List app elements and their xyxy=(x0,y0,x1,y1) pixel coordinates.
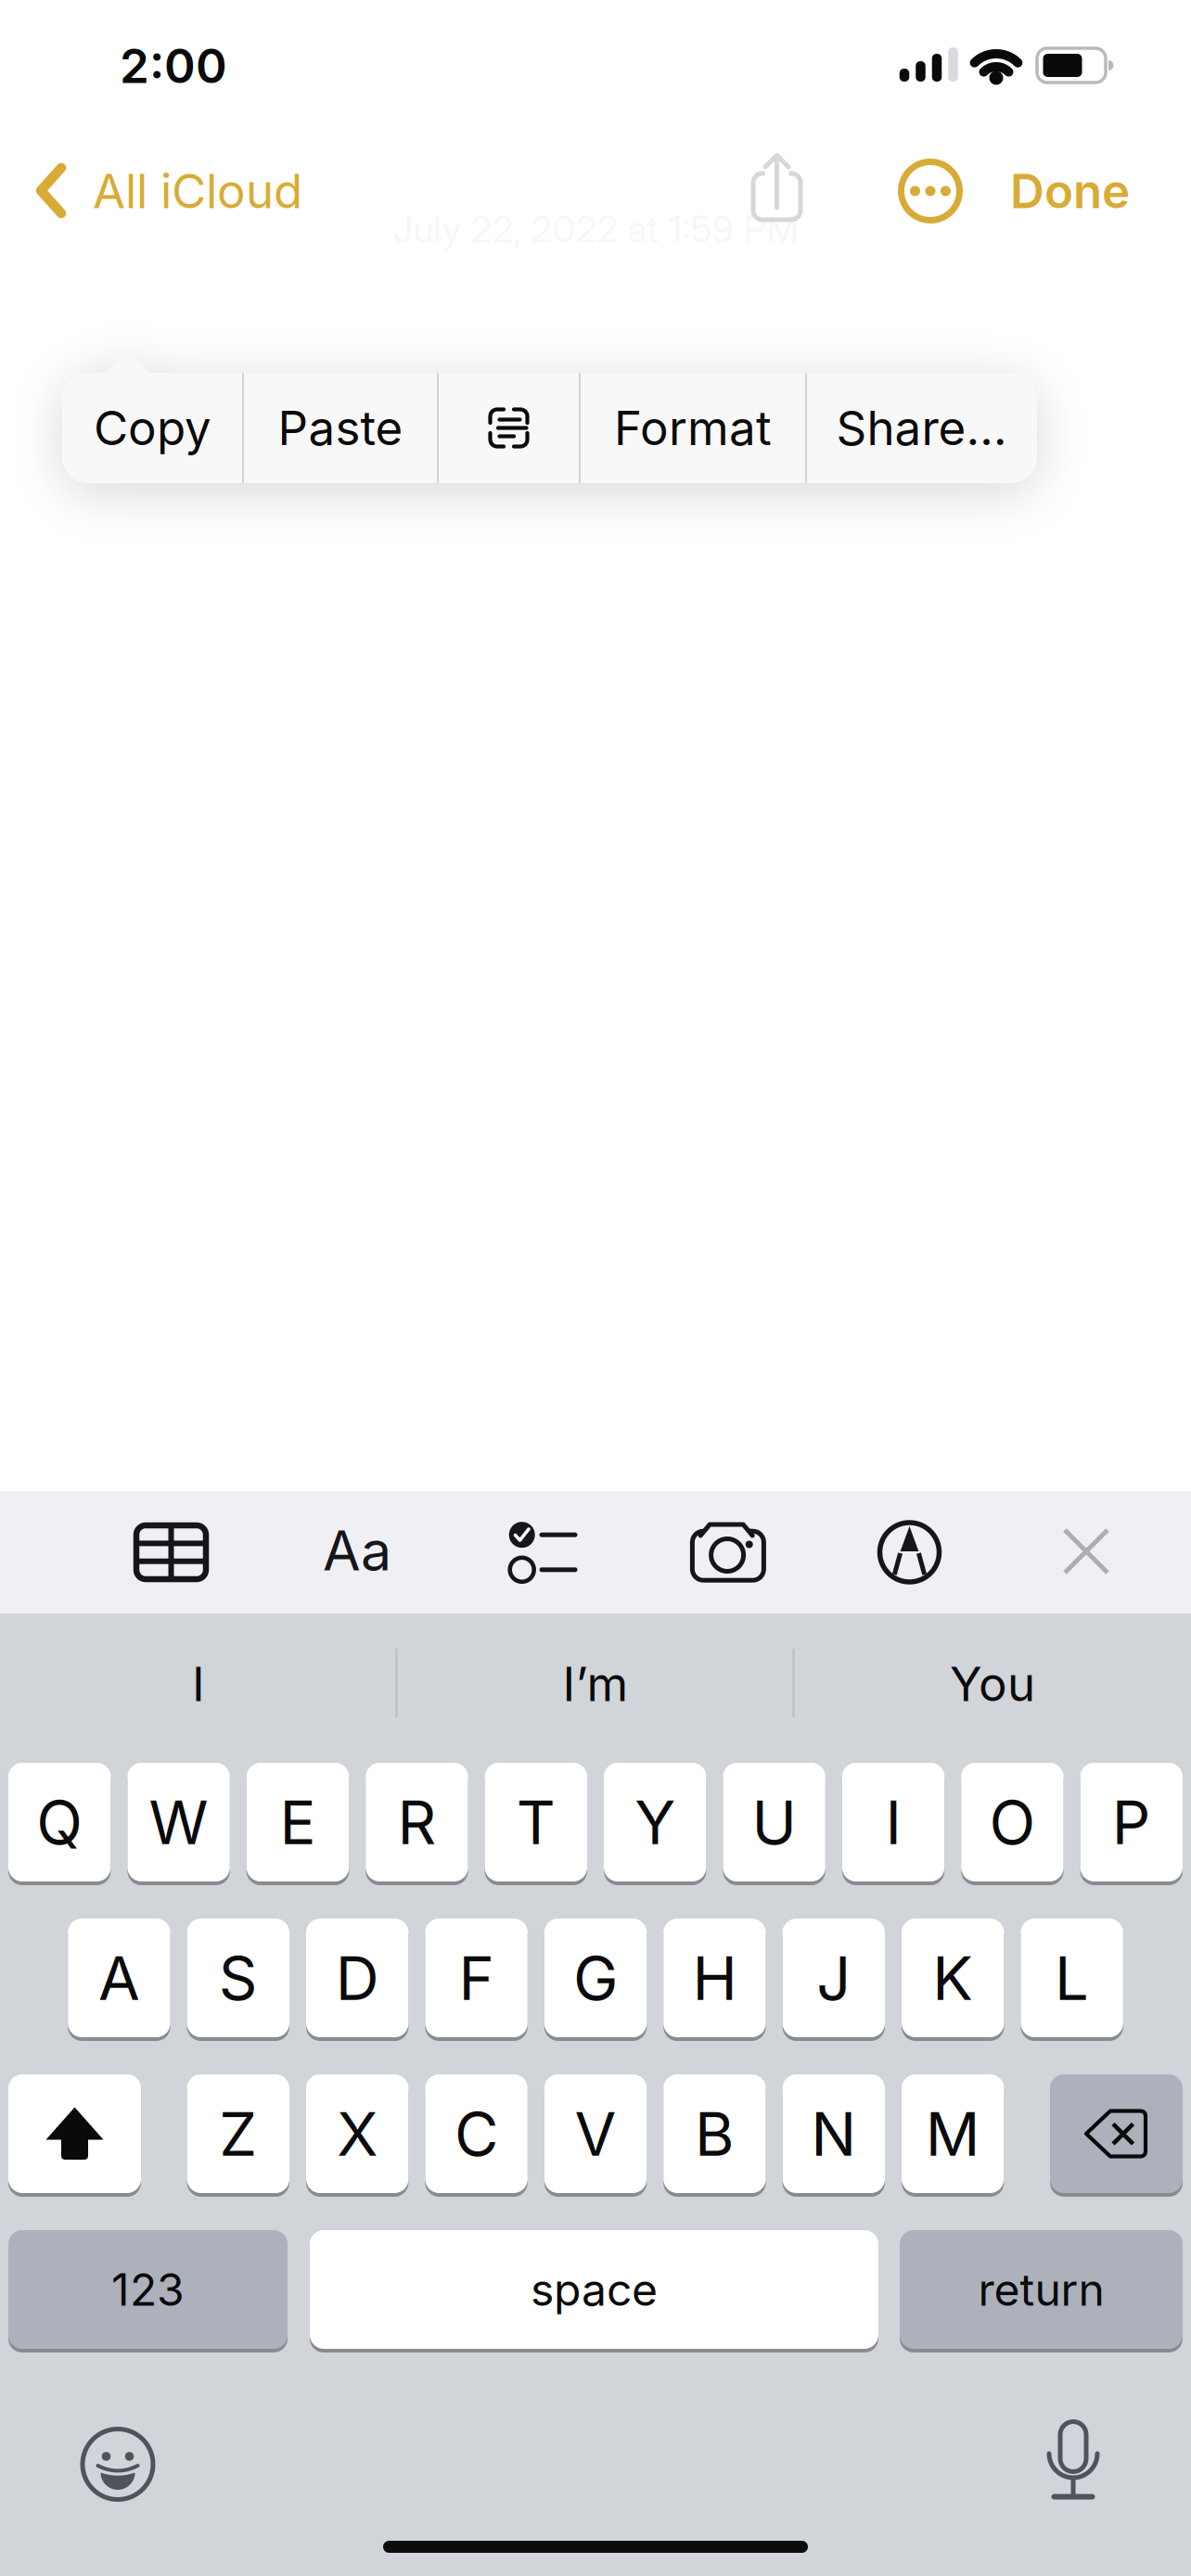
staticText: Done xyxy=(1010,162,1130,220)
staticText: H xyxy=(692,1941,737,2014)
staticText: July 22, 2022 at 1:59 PM xyxy=(393,207,798,251)
button[interactable]: Format xyxy=(301,1499,413,1601)
button[interactable]: F xyxy=(425,1917,528,2039)
staticText: 2:00 xyxy=(120,37,227,94)
staticText: W xyxy=(149,1786,208,1859)
button[interactable]: Paste xyxy=(244,373,437,483)
staticText: A xyxy=(98,1941,140,2014)
staticText: Y xyxy=(635,1786,675,1859)
button[interactable]: Markup xyxy=(854,1501,965,1603)
staticText: M xyxy=(925,2097,980,2170)
staticText: U xyxy=(752,1786,796,1859)
staticText: Z xyxy=(219,2097,257,2170)
staticText: L xyxy=(1055,1941,1089,2014)
button[interactable]: Delete xyxy=(1050,2072,1183,2195)
button[interactable]: I’m xyxy=(399,1628,792,1740)
button[interactable]: H xyxy=(663,1917,766,2039)
button[interactable]: Done xyxy=(954,154,1130,228)
button[interactable]: E xyxy=(247,1761,349,1883)
staticText: G xyxy=(573,1941,618,2014)
button[interactable]: P xyxy=(1080,1761,1183,1883)
button[interactable]: N xyxy=(782,2072,885,2195)
staticText: space xyxy=(531,2263,658,2316)
staticText: Share… xyxy=(836,399,1007,457)
staticText: E xyxy=(280,1786,316,1859)
staticText: Copy xyxy=(94,399,211,457)
staticText: N xyxy=(811,2097,856,2170)
staticText: S xyxy=(219,1941,258,2014)
staticText: I xyxy=(192,1655,205,1713)
button[interactable]: T xyxy=(485,1761,587,1883)
button[interactable]: Share xyxy=(747,148,807,226)
staticText: O xyxy=(989,1786,1036,1859)
button[interactable]: Y xyxy=(604,1761,706,1883)
button[interactable]: I xyxy=(2,1628,395,1740)
button[interactable]: More xyxy=(896,157,965,225)
button[interactable]: Format xyxy=(581,373,805,483)
button[interactable]: J xyxy=(782,1917,885,2039)
staticText: F xyxy=(459,1941,494,2014)
staticText: K xyxy=(932,1941,973,2014)
button[interactable]: L xyxy=(1021,1917,1123,2039)
button[interactable]: K xyxy=(902,1917,1004,2039)
button[interactable]: G xyxy=(544,1917,647,2039)
button[interactable]: Insert Table xyxy=(115,1501,227,1603)
button[interactable]: B xyxy=(663,2072,766,2195)
button[interactable]: C xyxy=(425,2072,528,2195)
button[interactable]: R xyxy=(366,1761,468,1883)
button[interactable]: V xyxy=(544,2072,647,2195)
staticText: I’m xyxy=(563,1655,628,1713)
staticText: Paste xyxy=(278,399,403,457)
button[interactable]: You xyxy=(796,1628,1189,1740)
button[interactable]: S xyxy=(187,1917,289,2039)
staticText: All iCloud xyxy=(93,162,302,220)
button[interactable]: Copy xyxy=(63,373,242,483)
staticText: B xyxy=(695,2097,735,2170)
button[interactable]: Q xyxy=(8,1761,111,1883)
button[interactable]: Scan Text xyxy=(439,373,579,483)
button[interactable]: 123 xyxy=(8,2228,288,2351)
button[interactable]: Camera xyxy=(672,1501,783,1603)
button[interactable]: M xyxy=(902,2072,1004,2195)
staticText: Q xyxy=(36,1786,83,1859)
staticText: V xyxy=(575,2097,616,2170)
button[interactable]: D xyxy=(306,1917,409,2039)
button[interactable]: Z xyxy=(187,2072,289,2195)
button[interactable]: X xyxy=(306,2072,409,2195)
button[interactable]: Shift xyxy=(8,2072,141,2195)
staticText: X xyxy=(337,2097,378,2170)
button[interactable]: Dismiss xyxy=(1031,1500,1142,1602)
button[interactable]: Dictate xyxy=(1045,2419,1101,2501)
staticText: D xyxy=(336,1941,379,2014)
staticText: Aa xyxy=(323,1517,391,1584)
staticText: Format xyxy=(614,399,772,457)
button[interactable]: A xyxy=(68,1917,170,2039)
button[interactable]: All iCloud xyxy=(28,152,315,230)
staticText: C xyxy=(455,2097,498,2170)
staticText: T xyxy=(516,1786,555,1859)
button[interactable]: return xyxy=(900,2228,1183,2351)
button[interactable]: W xyxy=(127,1761,230,1883)
button[interactable]: Share… xyxy=(807,373,1036,483)
button[interactable]: U xyxy=(723,1761,825,1883)
staticText: return xyxy=(978,2263,1104,2316)
staticText: You xyxy=(950,1655,1035,1713)
staticText: I xyxy=(885,1786,901,1859)
staticText: J xyxy=(817,1941,851,2014)
staticText: R xyxy=(397,1786,436,1859)
button[interactable]: I xyxy=(842,1761,944,1883)
button[interactable]: O xyxy=(961,1761,1064,1883)
staticText: P xyxy=(1112,1786,1151,1859)
button[interactable]: space xyxy=(310,2228,878,2351)
staticText: 123 xyxy=(111,2263,185,2316)
button[interactable]: Checklist xyxy=(487,1501,598,1603)
button[interactable]: Emoji xyxy=(79,2425,157,2503)
